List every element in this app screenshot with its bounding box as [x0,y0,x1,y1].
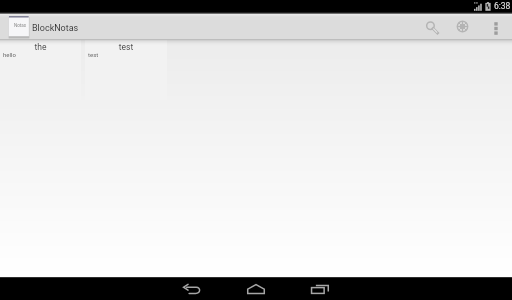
button[interactable]: Recents [305,277,335,300]
button[interactable]: Back [177,277,207,300]
button[interactable]: Home [241,277,271,300]
button[interactable]: Language [446,14,479,39]
staticText: BlockNotas [32,23,79,34]
staticText: test [88,51,99,58]
button[interactable]: test [85,40,167,100]
staticText: hello [3,51,16,58]
staticText: 6:38 [494,1,511,11]
button[interactable]: Notas [8,14,32,39]
staticText: the [0,42,81,52]
staticText: Notas [14,23,27,28]
button[interactable]: the [0,40,81,100]
button[interactable]: Search [415,14,446,39]
staticText: test [85,42,167,52]
button[interactable]: More options [479,14,512,39]
